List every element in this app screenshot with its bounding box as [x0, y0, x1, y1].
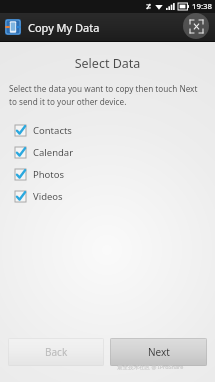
button[interactable]: Screen recorder overlay [183, 13, 209, 39]
staticText: Next [148, 345, 170, 359]
button[interactable]: Photos [0, 163, 215, 185]
staticText: Copy My Data [28, 20, 100, 35]
staticText: Back [45, 345, 68, 359]
button[interactable]: Videos [0, 185, 215, 207]
staticText: Photos [33, 168, 65, 181]
staticText: 最全技术社区 @ IProShare [117, 363, 184, 371]
staticText: Select Data [0, 55, 215, 72]
button[interactable]: Next [110, 338, 207, 366]
staticText: 19:38 [192, 1, 212, 12]
staticText: Calendar [33, 146, 74, 159]
button[interactable]: Contacts [0, 119, 215, 141]
button[interactable]: Back [8, 338, 104, 366]
staticText: Contacts [33, 124, 72, 137]
staticText: Select the data you want to copy then to… [9, 83, 198, 94]
button[interactable]: Copy My Data [5, 19, 100, 35]
button[interactable]: Calendar [0, 141, 215, 163]
staticText: Videos [33, 190, 63, 203]
staticText: to send it to your other device. [9, 96, 127, 107]
